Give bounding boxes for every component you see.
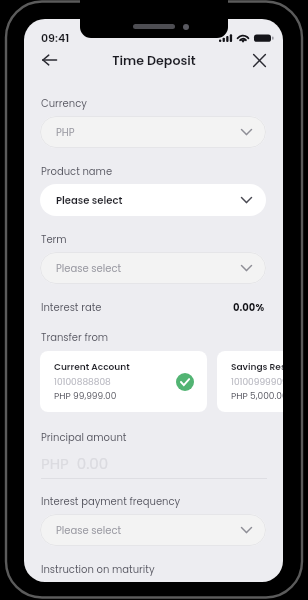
staticText: PHP 5,000.00 — [231, 390, 283, 403]
staticText: Principal amount — [41, 430, 127, 444]
staticText: 09:41 — [41, 30, 70, 45]
staticText: Interest rate — [41, 300, 102, 314]
staticText: Please select — [56, 523, 122, 537]
staticText: Savings Resident — [231, 361, 283, 374]
staticText: 10100888808 — [54, 376, 111, 389]
button[interactable]: Please select — [40, 252, 266, 284]
staticText: Product name — [41, 164, 113, 178]
staticText: Current Account — [54, 361, 130, 374]
staticText: 0.00% — [233, 300, 265, 314]
button[interactable]: Close — [247, 48, 271, 72]
staticText: Currency — [41, 96, 87, 110]
staticText: PHP — [56, 125, 75, 139]
button[interactable]: Back — [37, 48, 61, 72]
staticText: Transfer from — [41, 330, 109, 344]
staticText: Interest payment frequency — [41, 494, 181, 508]
staticText: PHP 0.00 — [41, 453, 109, 474]
button[interactable]: Current Account — [40, 351, 207, 412]
staticText: Please select — [56, 193, 123, 207]
staticText: Please select — [56, 261, 122, 275]
button[interactable]: Please select — [40, 184, 266, 216]
button[interactable]: Savings Resident — [217, 351, 283, 412]
staticText: Time Deposit — [112, 52, 196, 70]
staticText: Term — [41, 232, 67, 246]
staticText: PHP 99,999.00 — [54, 390, 117, 403]
button[interactable]: PHP — [40, 116, 266, 148]
staticText: 1010099990990 — [231, 376, 283, 389]
staticText: Instruction on maturity — [41, 562, 155, 576]
button[interactable]: Please select — [40, 514, 266, 546]
